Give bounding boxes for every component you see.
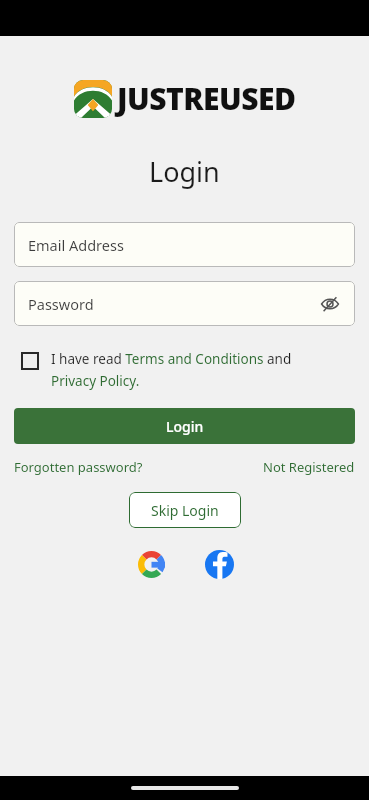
- button[interactable]: Show password: [319, 293, 341, 315]
- button[interactable]: Sign in with Google: [133, 546, 169, 582]
- staticText: Login: [149, 153, 220, 190]
- button[interactable]: Skip Login: [129, 492, 241, 528]
- button[interactable]: Login: [14, 408, 355, 444]
- staticText: Login: [166, 417, 204, 436]
- button[interactable]: I have read Terms and Conditions and: [51, 350, 292, 368]
- button[interactable]: Sign in with Facebook: [201, 546, 237, 582]
- button[interactable]: Forgotten password?: [14, 458, 143, 476]
- button[interactable]: Email Address: [14, 222, 355, 267]
- button[interactable]: Password: [14, 281, 355, 326]
- button[interactable]: Not Registered: [263, 458, 355, 476]
- staticText: Email Address: [28, 235, 124, 255]
- staticText: Skip Login: [151, 501, 219, 520]
- staticText: Password: [28, 294, 94, 314]
- staticText: JUSTREUSED: [117, 78, 296, 119]
- button[interactable]: [21, 352, 39, 370]
- button[interactable]: Privacy Policy.: [51, 372, 140, 390]
